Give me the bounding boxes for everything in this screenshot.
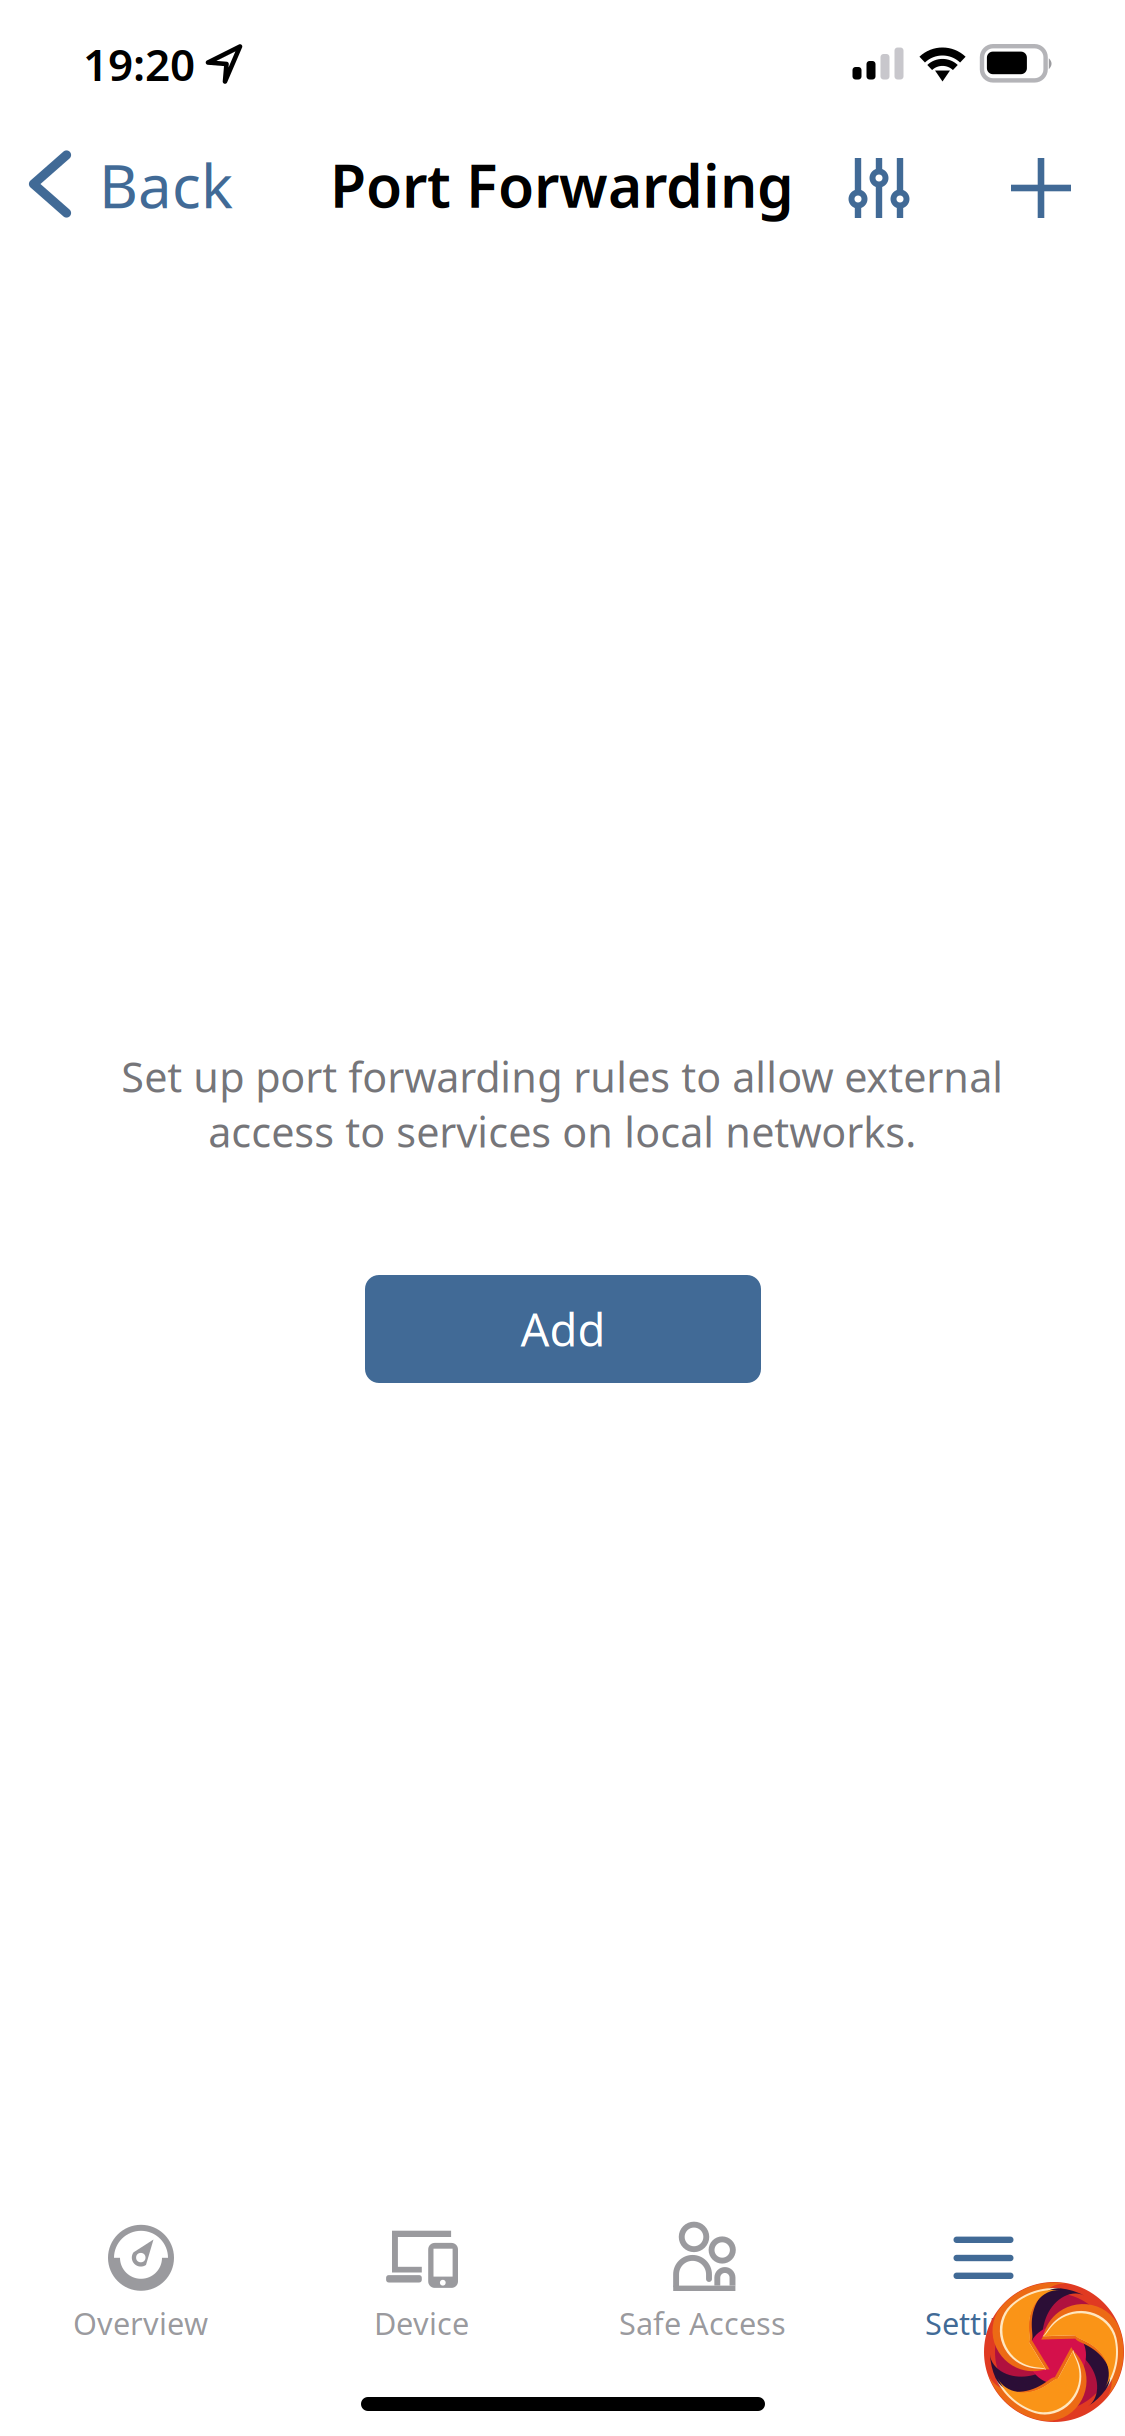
staticText: Device: [374, 2303, 469, 2343]
button[interactable]: Settings: [843, 2221, 1124, 2361]
staticText: Port Forwarding: [330, 146, 794, 224]
button[interactable]: Add rule: [981, 126, 1101, 250]
button[interactable]: Back: [0, 132, 250, 256]
button[interactable]: Device: [281, 2221, 562, 2361]
button[interactable]: Safe Access: [562, 2221, 843, 2361]
staticText: Overview: [73, 2303, 208, 2343]
staticText: Safe Access: [619, 2303, 786, 2343]
button[interactable]: Add: [365, 1275, 761, 1383]
button[interactable]: Filter rules: [819, 126, 939, 250]
staticText: Settings: [925, 2303, 1042, 2343]
button[interactable]: Overview: [0, 2221, 281, 2361]
staticText: 19:20: [83, 35, 195, 93]
staticText: Add: [520, 1299, 605, 1359]
staticText: Set up port forwarding rules to allow ex…: [121, 1049, 1003, 1159]
staticText: Back: [99, 145, 233, 225]
